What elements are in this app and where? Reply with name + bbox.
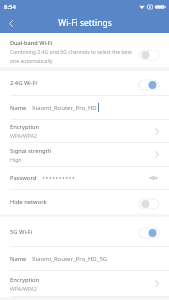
staticText: Dual-band Wi-Fi — [10, 39, 53, 47]
staticText: Name — [10, 255, 27, 263]
button[interactable]: Back — [0, 13, 22, 33]
staticText: 8:54 — [4, 3, 16, 11]
button[interactable]: Name — [0, 247, 169, 270]
button[interactable]: Show password — [147, 172, 159, 184]
button[interactable]: 5G Wi-Fi — [0, 217, 169, 246]
staticText: High — [10, 156, 22, 163]
button[interactable]: Dual-band Wi-Fi — [0, 33, 169, 67]
staticText: Xiaomi_Router_Pro_HD_5G — [32, 255, 108, 263]
staticText: Xiaomi_Router_Pro_HD — [32, 104, 97, 112]
staticText: WPA/WPA2 — [10, 132, 37, 139]
button[interactable]: 2.4G Wi-Fi — [0, 71, 169, 95]
staticText: Name — [10, 104, 27, 112]
staticText: Hide network — [10, 198, 47, 206]
staticText: Signal strength — [10, 147, 52, 155]
staticText: 5G Wi-Fi — [10, 228, 33, 236]
button[interactable]: Password — [0, 167, 169, 189]
staticText: Encryption — [10, 276, 40, 284]
staticText: WPA/WPA2 — [10, 285, 37, 292]
staticText: Encryption — [10, 123, 40, 131]
button[interactable]: Hide network — [0, 190, 169, 214]
staticText: 2.4G Wi-Fi — [10, 79, 38, 87]
staticText: Wi-Fi settings — [58, 17, 112, 29]
button[interactable]: Encryption — [0, 271, 169, 296]
button[interactable]: Signal strength — [0, 143, 169, 166]
staticText: Password — [10, 174, 37, 182]
button[interactable]: Encryption — [0, 120, 169, 142]
staticText: Combining 2.4G and 5G channels to select… — [10, 49, 132, 64]
button[interactable]: Name — [0, 96, 169, 119]
